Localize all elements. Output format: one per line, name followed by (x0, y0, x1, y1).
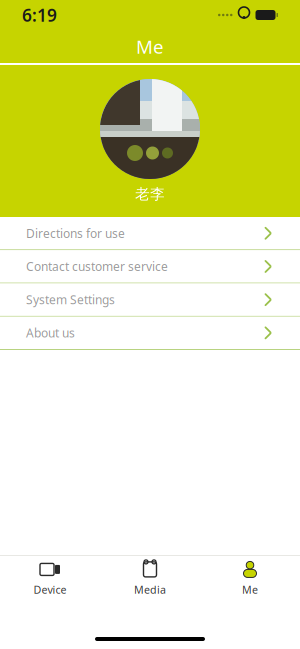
button[interactable]: Device (0, 556, 100, 601)
staticText: System Settings (26, 292, 115, 308)
staticText: Directions for use (26, 225, 125, 241)
button[interactable]: Contact customer service (0, 250, 300, 283)
staticText: Device (33, 582, 66, 597)
staticText: Me (242, 582, 258, 597)
button[interactable]: System Settings (0, 283, 300, 317)
button[interactable]: Me (200, 556, 300, 601)
button[interactable]: Media (100, 556, 200, 601)
staticText: 老李 (135, 185, 165, 203)
staticText: Contact customer service (26, 258, 168, 274)
staticText: Me (136, 34, 164, 59)
staticText: Media (134, 582, 166, 597)
button[interactable]: Directions for use (0, 217, 300, 250)
button[interactable]: About us (0, 317, 300, 350)
staticText: About us (26, 325, 75, 341)
staticText: 6:19 (22, 3, 57, 26)
